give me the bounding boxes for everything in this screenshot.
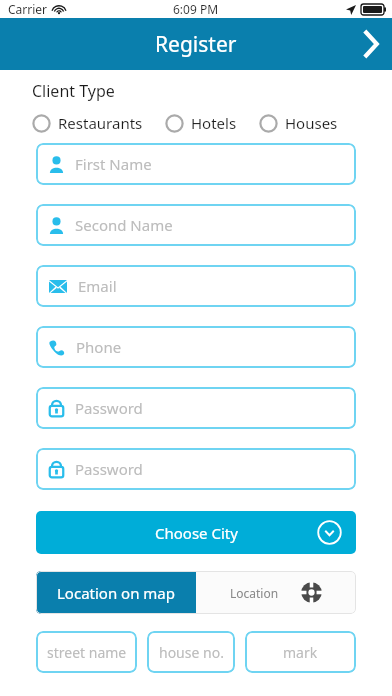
staticText: street name	[47, 643, 127, 662]
staticText: Location	[230, 585, 279, 601]
staticText: mark	[283, 643, 318, 662]
button[interactable]: Location	[196, 571, 356, 614]
button[interactable]: Choose City	[36, 511, 356, 554]
button[interactable]: Houses	[259, 111, 338, 135]
staticText: Email	[78, 276, 117, 296]
button[interactable]: Location on map	[36, 571, 196, 614]
button[interactable]: Phone	[36, 326, 356, 368]
staticText: house no.	[159, 643, 224, 662]
button[interactable]: Email	[36, 265, 356, 307]
staticText: Location on map	[57, 583, 175, 603]
button[interactable]: First Name	[36, 143, 356, 185]
staticText: Choose City	[155, 523, 238, 543]
staticText: Password	[75, 398, 143, 418]
button[interactable]: street name	[36, 631, 137, 673]
staticText: Hotels	[191, 113, 237, 133]
staticText: Second Name	[75, 215, 173, 235]
button[interactable]: Hotels	[165, 111, 237, 135]
staticText: Client Type	[32, 80, 115, 102]
staticText: Phone	[76, 337, 122, 357]
staticText: Houses	[285, 113, 338, 133]
button[interactable]: Password	[36, 448, 356, 490]
staticText: Carrier	[8, 1, 48, 17]
button[interactable]: mark	[245, 631, 356, 673]
button[interactable]: Next	[348, 18, 392, 70]
staticText: First Name	[75, 154, 152, 174]
staticText: Register	[155, 30, 237, 59]
button[interactable]: house no.	[147, 631, 235, 673]
staticText: Password	[75, 459, 143, 479]
staticText: 6:09 PM	[173, 1, 219, 17]
button[interactable]: Second Name	[36, 204, 356, 246]
button[interactable]: Password	[36, 387, 356, 429]
staticText: Restaurants	[58, 113, 143, 133]
button[interactable]: Restaurants	[32, 111, 143, 135]
